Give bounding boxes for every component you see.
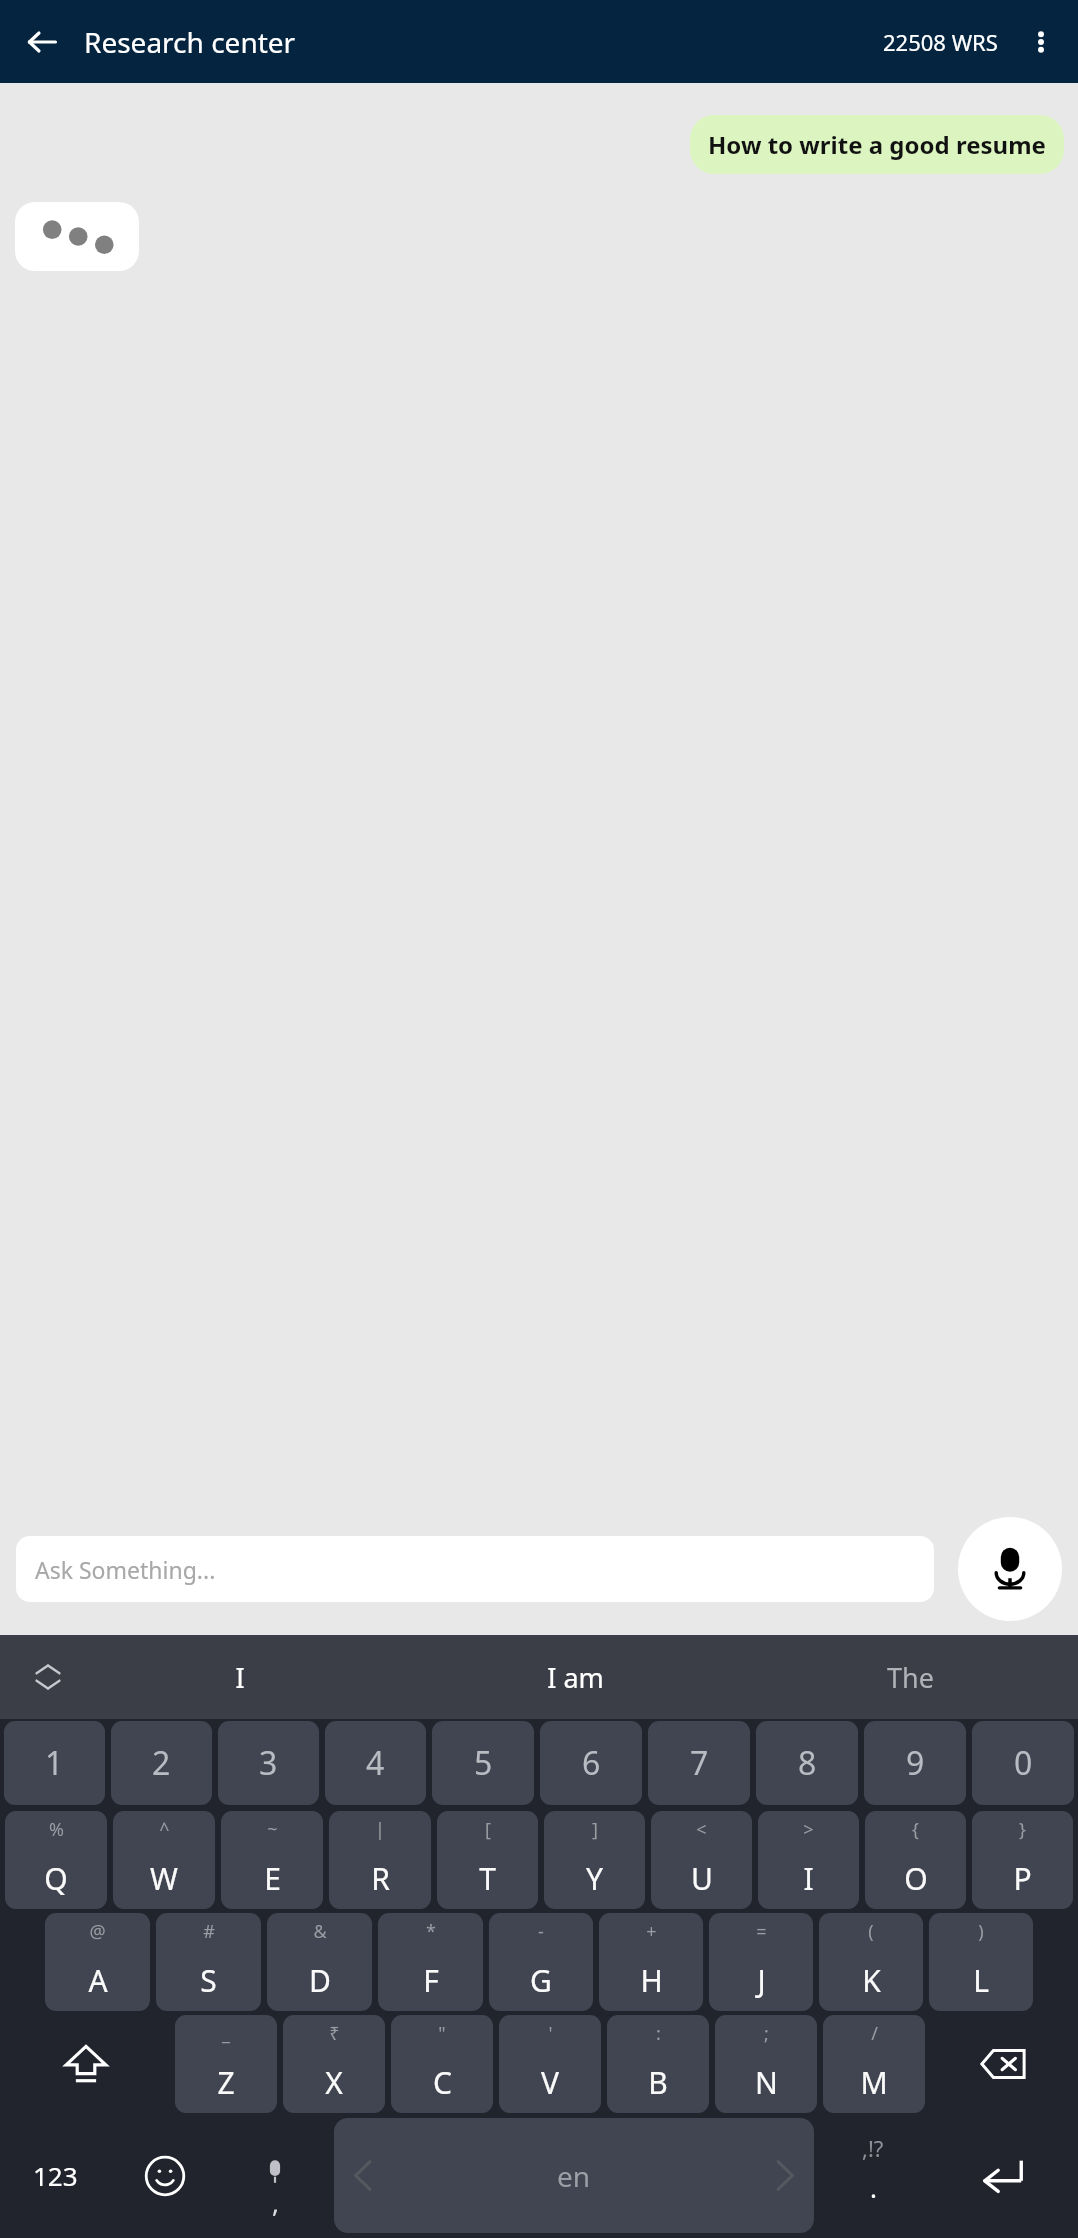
button[interactable]: =	[709, 1913, 813, 2011]
staticText: -	[538, 1919, 544, 1944]
button[interactable]: ,!?	[818, 2113, 928, 2238]
staticText: X	[325, 2062, 343, 2103]
staticText: )	[978, 1919, 984, 1944]
staticText: P	[1013, 1858, 1032, 1899]
button[interactable]: Backspace	[928, 2015, 1078, 2113]
button[interactable]: ^	[113, 1811, 215, 1909]
button[interactable]: -	[489, 1913, 593, 2011]
button[interactable]: 1	[4, 1721, 105, 1805]
button[interactable]: )	[929, 1913, 1033, 2011]
button[interactable]: Enter	[928, 2113, 1078, 2238]
staticText: C	[433, 2062, 452, 2103]
button[interactable]: I am	[408, 1635, 743, 1719]
staticText: R	[371, 1858, 390, 1899]
staticText: 4	[366, 1741, 385, 1785]
button[interactable]: %	[5, 1811, 107, 1909]
staticText: 6	[582, 1741, 601, 1785]
staticText: T	[479, 1858, 496, 1899]
staticText: {	[912, 1817, 919, 1842]
staticText: <	[696, 1817, 707, 1842]
staticText: (	[868, 1919, 874, 1944]
button[interactable]: Shift	[0, 2015, 172, 2113]
button[interactable]: {	[865, 1811, 966, 1909]
staticText: W	[150, 1858, 178, 1899]
button[interactable]	[15, 202, 139, 271]
button[interactable]: Ask Something...	[16, 1536, 934, 1602]
staticText: L	[973, 1960, 989, 2001]
staticText: @	[89, 1919, 106, 1944]
button[interactable]: 3	[218, 1721, 319, 1805]
button[interactable]: 4	[325, 1721, 426, 1805]
button[interactable]: >	[758, 1811, 859, 1909]
staticText: U	[691, 1858, 713, 1899]
button[interactable]: ;	[715, 2015, 817, 2113]
button[interactable]: Voice input	[958, 1517, 1062, 1621]
staticText: [	[485, 1817, 491, 1842]
button[interactable]: /	[823, 2015, 925, 2113]
button[interactable]: 22508 WRS	[883, 27, 998, 57]
button[interactable]: <	[651, 1811, 752, 1909]
staticText: G	[530, 1960, 552, 2001]
button[interactable]: "	[391, 2015, 493, 2113]
button[interactable]: 9	[864, 1721, 966, 1805]
button[interactable]: 2	[111, 1721, 212, 1805]
button[interactable]: Voice typing	[220, 2113, 330, 2238]
button[interactable]: ~	[221, 1811, 323, 1909]
staticText: *	[426, 1919, 436, 1944]
staticText: 5	[474, 1741, 493, 1785]
button[interactable]: 8	[756, 1721, 858, 1805]
button[interactable]: 0	[972, 1721, 1074, 1805]
staticText: J	[757, 1960, 766, 2001]
button[interactable]: '	[499, 2015, 601, 2113]
button[interactable]: ]	[544, 1811, 645, 1909]
staticText: en	[557, 2157, 591, 2195]
button[interactable]: :	[607, 2015, 709, 2113]
staticText: I am	[547, 1659, 604, 1696]
button[interactable]: Expand suggestions	[22, 1651, 74, 1703]
staticText: H	[640, 1960, 663, 2001]
staticText: How to write a good resume	[708, 128, 1046, 161]
button[interactable]: en	[334, 2118, 814, 2233]
staticText: .	[870, 2170, 877, 2205]
button[interactable]: &	[267, 1913, 372, 2011]
button[interactable]: +	[599, 1913, 703, 2011]
button[interactable]: #	[156, 1913, 261, 2011]
button[interactable]: (	[819, 1913, 923, 2011]
button[interactable]: Back	[14, 14, 70, 70]
button[interactable]: Emoji	[110, 2113, 220, 2238]
staticText: N	[755, 2062, 778, 2103]
button[interactable]: I	[72, 1635, 408, 1719]
staticText: E	[264, 1858, 281, 1899]
button[interactable]: }	[972, 1811, 1073, 1909]
button[interactable]: [	[437, 1811, 538, 1909]
staticText: 7	[690, 1741, 709, 1785]
button[interactable]: 7	[648, 1721, 750, 1805]
staticText: Ask Something...	[35, 1554, 216, 1585]
button[interactable]: How to write a good resume	[690, 115, 1064, 174]
button[interactable]: More options	[1018, 19, 1064, 65]
staticText: "	[438, 2021, 446, 2046]
staticText: >	[803, 1817, 814, 1842]
button[interactable]: 5	[432, 1721, 534, 1805]
staticText: =	[756, 1919, 767, 1944]
staticText: S	[200, 1960, 217, 2001]
button[interactable]: ₹	[283, 2015, 385, 2113]
staticText: The	[887, 1659, 934, 1696]
staticText: ~	[267, 1817, 278, 1842]
staticText: M	[860, 2062, 888, 2103]
button[interactable]: @	[45, 1913, 150, 2011]
button[interactable]: _	[175, 2015, 277, 2113]
staticText: ;	[764, 2021, 769, 2046]
button[interactable]: 6	[540, 1721, 642, 1805]
staticText: F	[423, 1960, 439, 2001]
staticText: #	[203, 1919, 215, 1944]
staticText: +	[646, 1919, 657, 1944]
staticText: 2	[152, 1741, 171, 1785]
button[interactable]: |	[329, 1811, 431, 1909]
button[interactable]: The	[743, 1635, 1078, 1719]
staticText: ₹	[329, 2021, 340, 2046]
button[interactable]: *	[378, 1913, 483, 2011]
button[interactable]: 123	[0, 2113, 110, 2238]
staticText: V	[541, 2062, 559, 2103]
staticText: Z	[217, 2062, 235, 2103]
